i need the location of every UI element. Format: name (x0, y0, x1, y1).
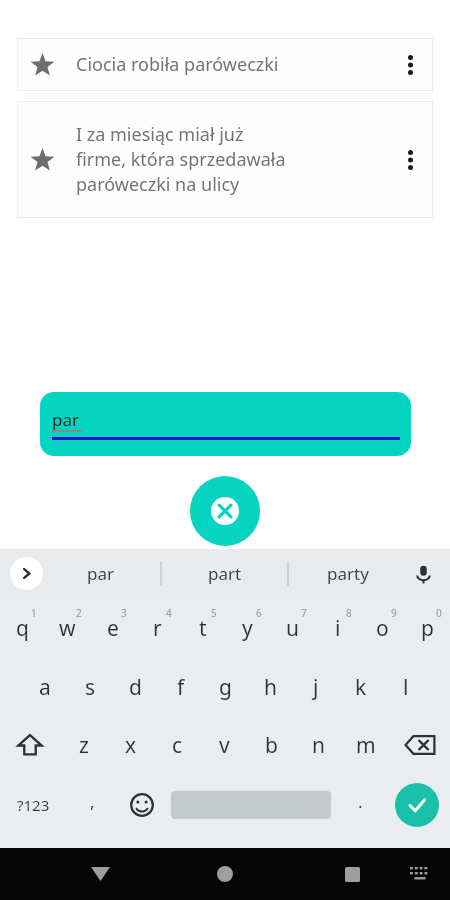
button[interactable]: b (248, 716, 295, 774)
button[interactable]: part (173, 549, 277, 598)
staticText: s (85, 673, 96, 702)
staticText: par (87, 562, 115, 585)
staticText: h (264, 673, 277, 702)
button[interactable]: Emoji (118, 774, 166, 836)
staticText: p (421, 614, 434, 643)
button[interactable]: party (296, 549, 400, 598)
staticText: l (403, 673, 409, 702)
button[interactable]: o (360, 598, 405, 658)
staticText: party (327, 562, 369, 585)
button[interactable]: a (22, 658, 68, 716)
button[interactable]: w (45, 598, 90, 658)
staticText: 6 (256, 606, 262, 620)
staticText: 1 (31, 606, 37, 620)
button[interactable]: u (270, 598, 315, 658)
button[interactable]: x (107, 716, 154, 774)
staticText: 0 (436, 606, 442, 620)
button[interactable]: k (338, 658, 383, 716)
button[interactable]: Voice input (406, 557, 440, 591)
button[interactable]: Recent apps (327, 848, 377, 900)
button[interactable]: s (68, 658, 113, 716)
button[interactable]: Favourite (25, 143, 59, 177)
button[interactable]: f (158, 658, 203, 716)
button[interactable]: Switch keyboard (398, 852, 442, 896)
staticText: I za miesiąc miał już (76, 122, 244, 147)
button[interactable]: e (90, 598, 135, 658)
staticText: , (90, 790, 95, 813)
staticText: v (219, 731, 230, 760)
button[interactable]: i (315, 598, 360, 658)
staticText: q (16, 614, 29, 643)
staticText: paróweczki na ulicy (76, 172, 240, 197)
button[interactable]: , (66, 774, 118, 836)
button[interactable]: y (225, 598, 270, 658)
staticText: o (376, 614, 389, 643)
button[interactable]: par (40, 392, 411, 456)
staticText: j (313, 673, 319, 702)
button[interactable]: v (201, 716, 248, 774)
button[interactable]: d (113, 658, 158, 716)
button[interactable]: g (203, 658, 248, 716)
staticText: Ciocia robiła paróweczki (76, 52, 279, 77)
button[interactable]: p (405, 598, 450, 658)
staticText: part (208, 562, 242, 585)
button[interactable]: l (383, 658, 428, 716)
staticText: f (177, 673, 185, 702)
button[interactable]: h (248, 658, 293, 716)
staticText: . (358, 790, 363, 813)
button[interactable]: Hide keyboard (75, 848, 125, 900)
staticText: y (242, 614, 253, 643)
staticText: m (356, 731, 376, 760)
button[interactable]: Favourite (25, 48, 59, 82)
staticText: 8 (346, 606, 352, 620)
staticText: 2 (76, 606, 82, 620)
button[interactable]: Backspace (389, 716, 450, 774)
button[interactable]: Clear (190, 476, 260, 546)
staticText: r (153, 614, 162, 643)
staticText: ?123 (17, 795, 50, 815)
staticText: par (52, 408, 80, 431)
staticText: b (265, 731, 278, 760)
staticText: 9 (391, 606, 397, 620)
staticText: 5 (211, 606, 217, 620)
staticText: d (129, 673, 142, 702)
button[interactable]: par (49, 549, 153, 598)
staticText: k (355, 673, 367, 702)
button[interactable]: j (293, 658, 338, 716)
staticText: 3 (121, 606, 127, 620)
button[interactable]: Expand suggestions (10, 557, 43, 590)
button[interactable]: Favourite (17, 38, 433, 91)
staticText: g (219, 673, 232, 702)
staticText: t (199, 614, 207, 643)
button[interactable]: Shift (0, 716, 60, 774)
button[interactable]: r (135, 598, 180, 658)
staticText: z (79, 731, 89, 760)
staticText: u (286, 614, 299, 643)
button[interactable]: q (0, 598, 45, 658)
button[interactable]: Enter (384, 774, 450, 836)
staticText: a (39, 673, 51, 702)
staticText: e (107, 614, 119, 643)
staticText: w (59, 614, 76, 643)
button[interactable]: ?123 (0, 774, 66, 836)
button[interactable]: m (342, 716, 389, 774)
staticText: 4 (166, 606, 172, 620)
staticText: c (172, 731, 183, 760)
button[interactable]: Favourite (17, 101, 433, 218)
staticText: firme, która sprzedawała (76, 147, 286, 172)
button[interactable]: n (295, 716, 342, 774)
button[interactable]: More options (393, 48, 427, 82)
button[interactable]: Home (200, 849, 250, 899)
button[interactable]: More options (393, 143, 427, 177)
button[interactable]: c (154, 716, 201, 774)
staticText: x (125, 731, 137, 760)
button[interactable]: z (60, 716, 107, 774)
button[interactable]: t (180, 598, 225, 658)
button[interactable]: . (336, 774, 384, 836)
staticText: 7 (301, 606, 307, 620)
staticText: i (335, 614, 341, 643)
staticText: n (312, 731, 325, 760)
